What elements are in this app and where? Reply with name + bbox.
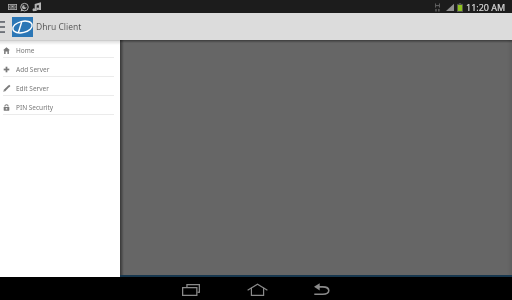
staticText: Dhru Client	[36, 21, 82, 33]
button[interactable]: Open navigation drawer	[0, 13, 9, 40]
staticText: 11:20 AM	[466, 1, 506, 13]
button[interactable]: Add Server	[0, 58, 120, 77]
button[interactable]: Home	[235, 277, 279, 300]
button[interactable]: Recent apps	[169, 277, 213, 300]
button[interactable]: Edit Server	[0, 77, 120, 96]
staticText: Edit Server	[16, 84, 49, 93]
staticText: Add Server	[16, 65, 50, 74]
button[interactable]: Back	[299, 277, 343, 300]
staticText: PIN Security	[16, 103, 54, 112]
button[interactable]: PIN Security	[0, 96, 120, 115]
staticText: Home	[16, 46, 35, 55]
button[interactable]: Home	[0, 39, 120, 58]
